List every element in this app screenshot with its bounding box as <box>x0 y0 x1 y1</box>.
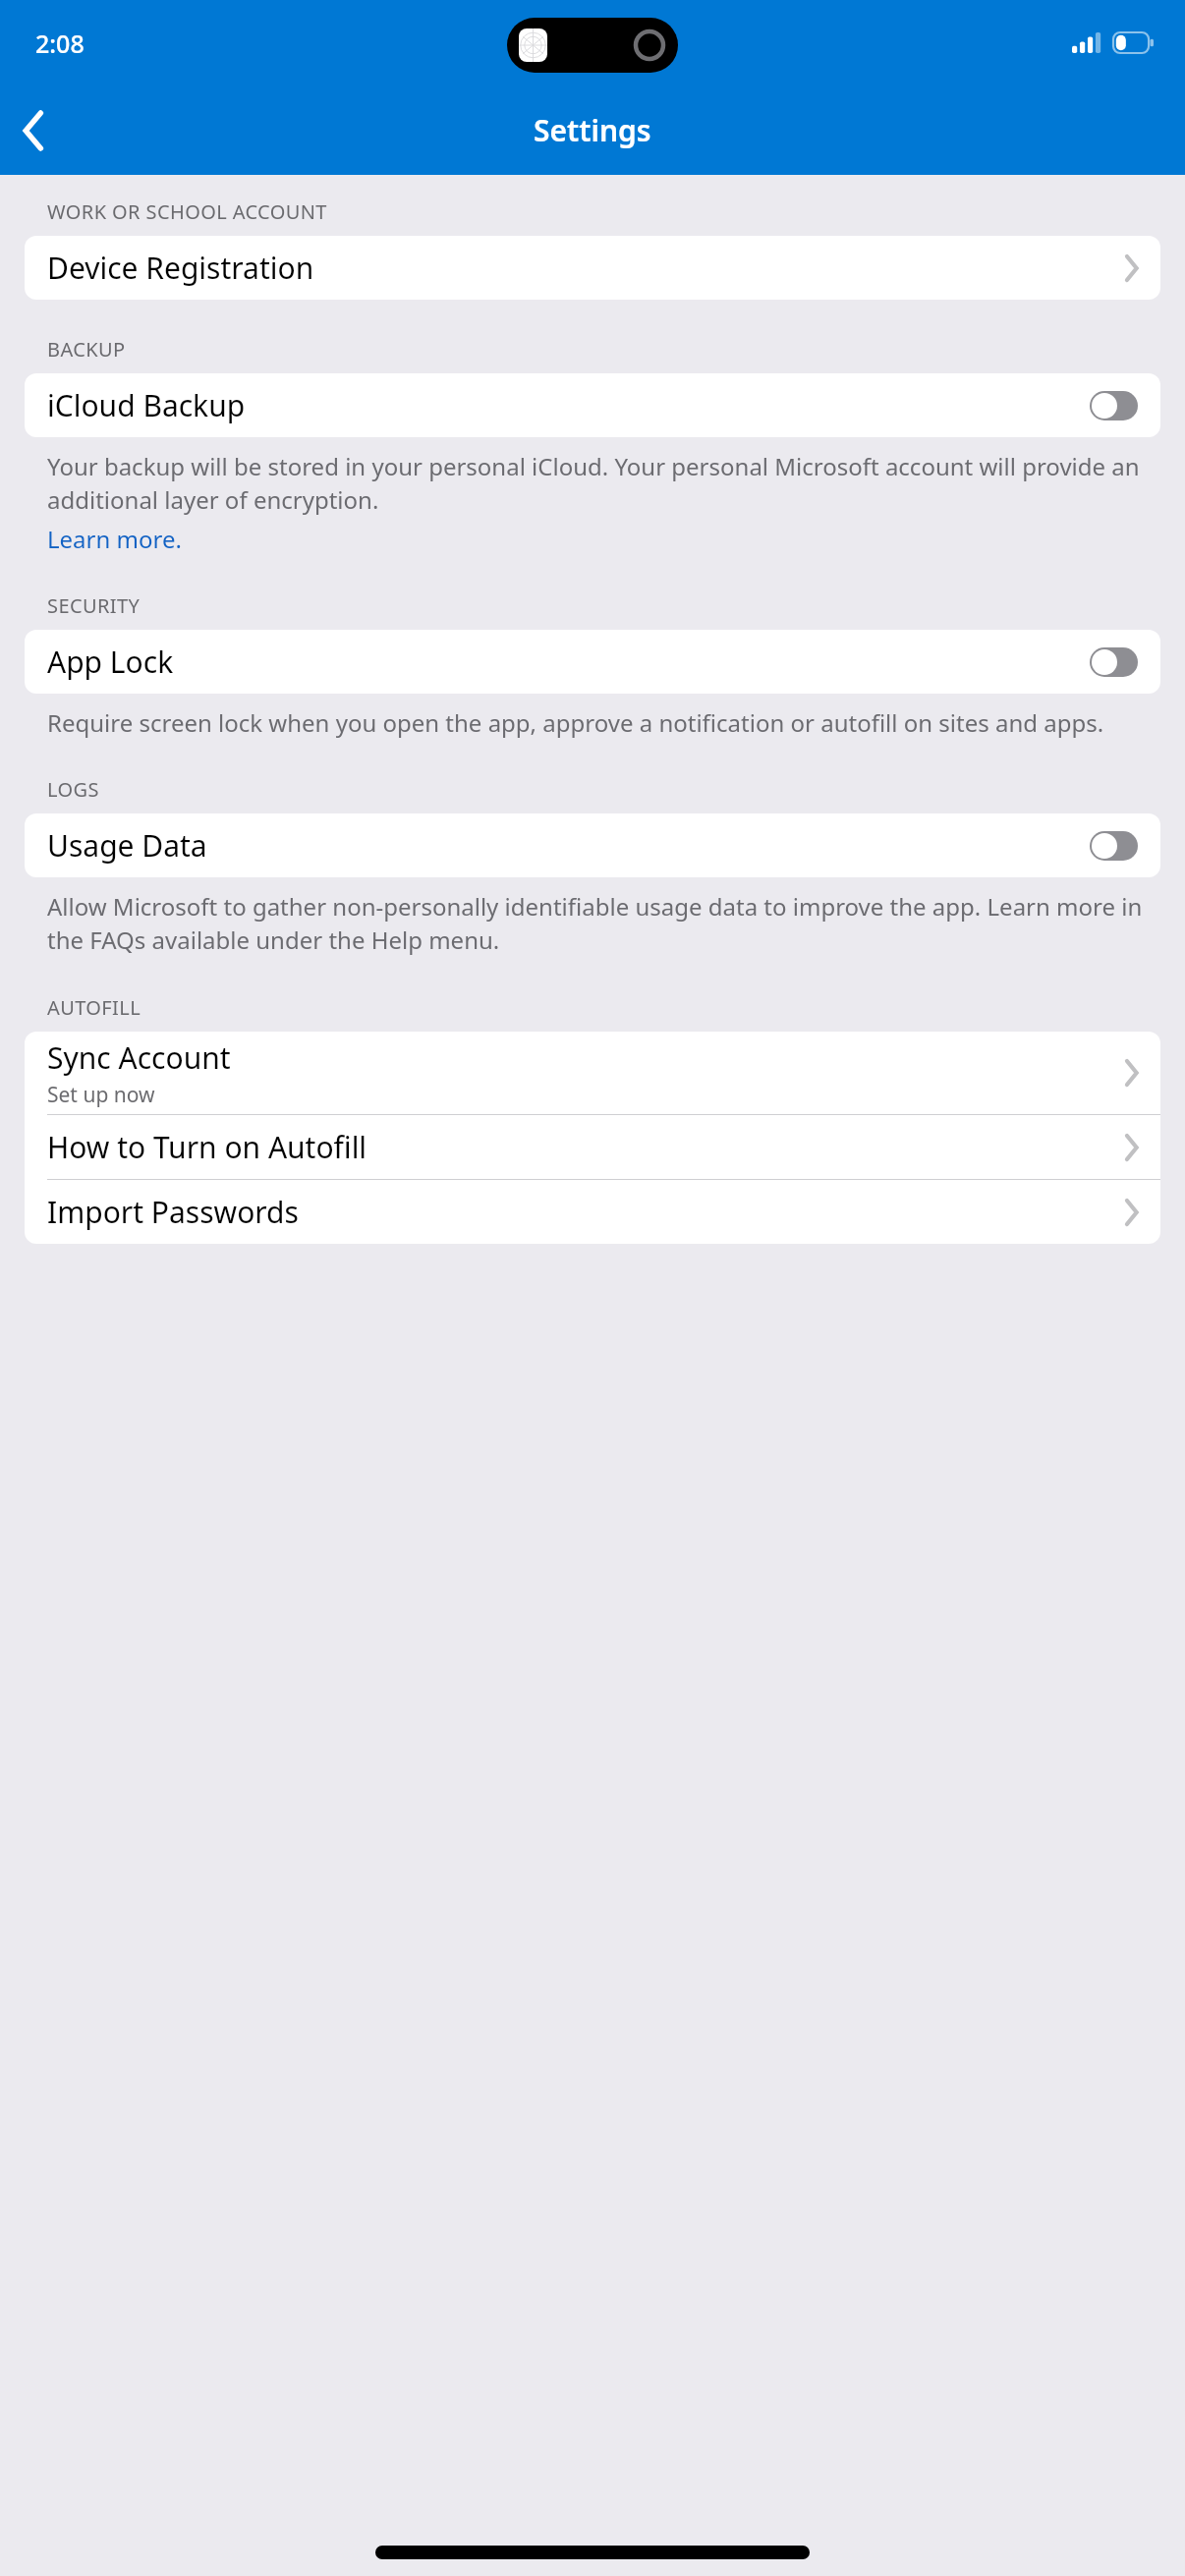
button[interactable]: iCloud Backup <box>25 373 1160 437</box>
button[interactable]: Device Registration <box>25 236 1160 300</box>
staticText: Your backup will be stored in your perso… <box>47 450 1146 517</box>
staticText: 2:08 <box>35 27 85 60</box>
staticText: Import Passwords <box>47 1192 299 1232</box>
staticText: Allow Microsoft to gather non-personally… <box>47 890 1146 957</box>
staticText: Sync Account <box>47 1037 231 1078</box>
staticText: Require screen lock when you open the ap… <box>47 706 1104 739</box>
staticText: Settings <box>534 110 651 150</box>
staticText: SECURITY <box>47 592 141 619</box>
button[interactable]: App Lock <box>25 630 1160 694</box>
button[interactable]: Learn more. <box>47 523 182 555</box>
staticText: LOGS <box>47 776 99 803</box>
staticText: App Lock <box>47 642 174 682</box>
button[interactable]: Import Passwords <box>25 1180 1160 1244</box>
button[interactable]: Sync Account <box>25 1032 1160 1115</box>
button[interactable]: Back <box>0 85 69 175</box>
staticText: AUTOFILL <box>47 994 141 1021</box>
staticText: BACKUP <box>47 336 126 363</box>
staticText: Usage Data <box>47 825 207 866</box>
staticText: Device Registration <box>47 248 314 288</box>
staticText: How to Turn on Autofill <box>47 1127 367 1167</box>
staticText: iCloud Backup <box>47 385 246 425</box>
staticText: Learn more. <box>47 523 182 555</box>
staticText: Set up now <box>47 1081 155 1109</box>
staticText: WORK OR SCHOOL ACCOUNT <box>47 198 327 225</box>
button[interactable]: How to Turn on Autofill <box>25 1115 1160 1180</box>
button[interactable]: Usage Data <box>25 813 1160 877</box>
